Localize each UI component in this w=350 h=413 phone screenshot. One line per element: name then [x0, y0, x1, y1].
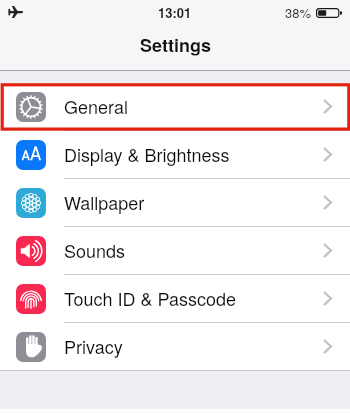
- staticText: Settings: [140, 32, 211, 58]
- other: Open Touch ID & Passcode: [323, 291, 332, 306]
- other: Open Sounds: [323, 243, 332, 258]
- staticText: 38%: [285, 3, 312, 22]
- staticText: Wallpaper: [64, 189, 145, 215]
- staticText: Touch ID & Passcode: [64, 285, 236, 311]
- other: Battery 38 percent: [316, 8, 342, 18]
- other: Airplane mode: [8, 6, 23, 18]
- other: Open Wallpaper: [323, 195, 332, 210]
- staticText: 13:01: [158, 3, 192, 22]
- other: Open Privacy: [323, 339, 332, 354]
- staticText: Privacy: [64, 333, 123, 359]
- button[interactable]: Touch ID & Passcode: [0, 275, 350, 322]
- staticText: General: [64, 93, 128, 119]
- other: Open General: [323, 99, 332, 114]
- button[interactable]: Display & Brightness: [0, 131, 350, 178]
- button[interactable]: Privacy: [0, 323, 350, 370]
- other: Open Display & Brightness: [323, 147, 332, 162]
- button[interactable]: Sounds: [0, 227, 350, 274]
- button[interactable]: General: [0, 83, 350, 130]
- staticText: Display & Brightness: [64, 141, 230, 167]
- staticText: Sounds: [64, 237, 126, 263]
- button[interactable]: Wallpaper: [0, 179, 350, 226]
